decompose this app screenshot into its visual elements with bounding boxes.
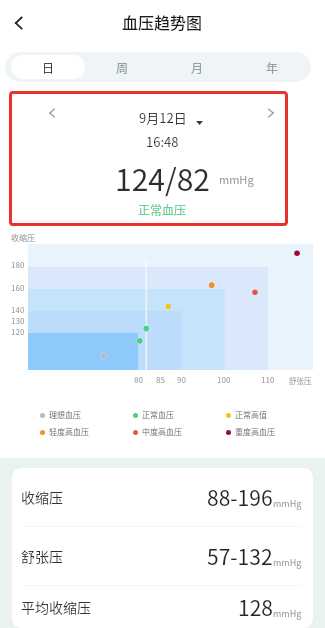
staticText: 舒张压 — [289, 375, 312, 386]
button[interactable]: Previous day — [44, 105, 60, 121]
staticText: 85 — [156, 374, 165, 386]
staticText: 120 — [11, 326, 25, 338]
staticText: 中度高血压 — [142, 426, 182, 438]
staticText: 88-196 — [207, 482, 273, 512]
staticText: 平均收缩压 — [21, 597, 91, 617]
staticText: 100 — [217, 374, 231, 386]
staticText: 180 — [11, 259, 25, 271]
staticText: 周 — [116, 59, 129, 76]
staticText: 轻度高血压 — [49, 426, 89, 438]
staticText: 舒张压 — [21, 546, 63, 566]
staticText: 收缩压 — [21, 487, 63, 507]
staticText: 130 — [11, 315, 25, 327]
button[interactable]: 月 — [160, 55, 235, 79]
staticText: mmHg — [273, 497, 302, 510]
staticText: 正常高值 — [235, 409, 267, 421]
staticText: 年 — [266, 59, 279, 76]
staticText: 9月12日 — [139, 108, 187, 127]
staticText: 16:48 — [146, 132, 179, 151]
staticText: mmHg — [219, 171, 254, 187]
staticText: 57-132 — [207, 541, 273, 571]
staticText: 160 — [11, 282, 25, 294]
button[interactable]: Next day — [263, 105, 279, 121]
staticText: 140 — [11, 304, 25, 316]
staticText: 128 — [238, 592, 273, 622]
button[interactable]: 周 — [85, 55, 160, 79]
button[interactable]: 平均收缩压 — [12, 586, 313, 628]
staticText: 收缩压 — [11, 232, 35, 244]
staticText: 正常血压 — [142, 409, 174, 421]
button[interactable]: 收缩压 — [12, 468, 313, 526]
staticText: 正常血压 — [138, 201, 187, 218]
button[interactable]: 日 — [11, 55, 85, 79]
staticText: 理想血压 — [49, 409, 81, 421]
staticText: 月 — [191, 59, 204, 76]
staticText: 80 — [134, 374, 143, 386]
staticText: 血压趋势图 — [122, 10, 203, 33]
button[interactable]: Back — [0, 4, 38, 42]
staticText: 日 — [42, 59, 55, 76]
staticText: 90 — [177, 374, 186, 386]
button[interactable]: 年 — [235, 55, 310, 79]
staticText: mmHg — [273, 607, 302, 620]
staticText: 110 — [261, 374, 275, 386]
staticText: mmHg — [273, 556, 302, 569]
button[interactable]: 舒张压 — [12, 527, 313, 585]
staticText: 124/82 — [115, 156, 211, 199]
staticText: 重度高血压 — [235, 426, 275, 438]
